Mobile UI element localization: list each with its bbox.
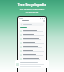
button[interactable] bbox=[20, 50, 44, 52]
staticText: Tree Encyclopedia bbox=[2, 3, 62, 7]
button[interactable] bbox=[21, 23, 43, 26]
button[interactable] bbox=[20, 38, 44, 40]
button[interactable] bbox=[15, 60, 49, 68]
button[interactable] bbox=[20, 30, 44, 32]
staticText: The strongest information bbox=[2, 8, 62, 11]
button[interactable]: Menu bbox=[19, 19, 45, 22]
button[interactable] bbox=[20, 54, 44, 56]
button[interactable] bbox=[20, 58, 44, 60]
button[interactable] bbox=[20, 46, 44, 48]
button[interactable] bbox=[20, 42, 44, 44]
button[interactable] bbox=[20, 34, 44, 36]
staticText: on the planet bbox=[2, 11, 62, 14]
